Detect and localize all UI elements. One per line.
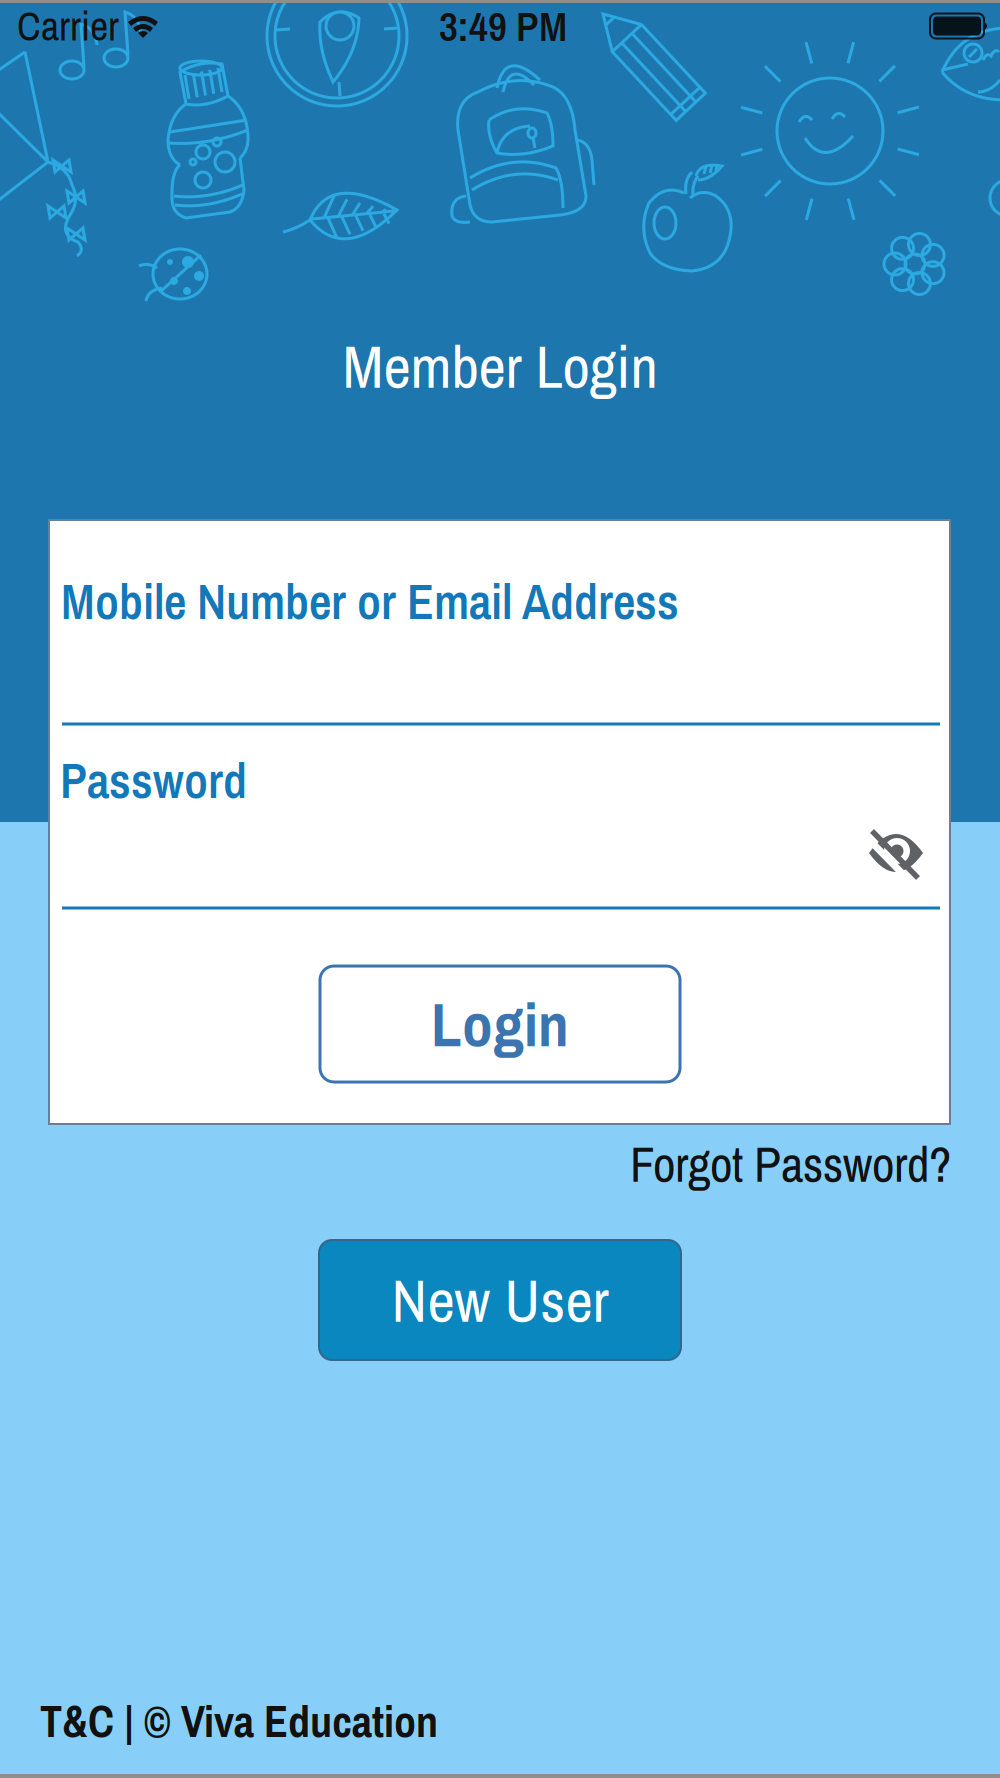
button[interactable]: Login <box>320 966 680 1082</box>
staticText: T&C | © Viva Education <box>40 1691 438 1751</box>
staticText: Login <box>431 983 569 1065</box>
button[interactable]: Forgot Password? <box>551 1131 951 1197</box>
staticText: Mobile Number or Email Address <box>61 568 679 634</box>
staticText: 3:49 PM <box>439 0 567 54</box>
staticText: Carrier <box>17 0 119 53</box>
staticText: New User <box>391 1260 608 1340</box>
button[interactable]: Show password <box>868 828 924 878</box>
staticText: Member Login <box>342 326 657 406</box>
button[interactable]: New User <box>319 1240 681 1360</box>
staticText: Password <box>60 747 247 813</box>
staticText: Forgot Password? <box>630 1131 951 1197</box>
